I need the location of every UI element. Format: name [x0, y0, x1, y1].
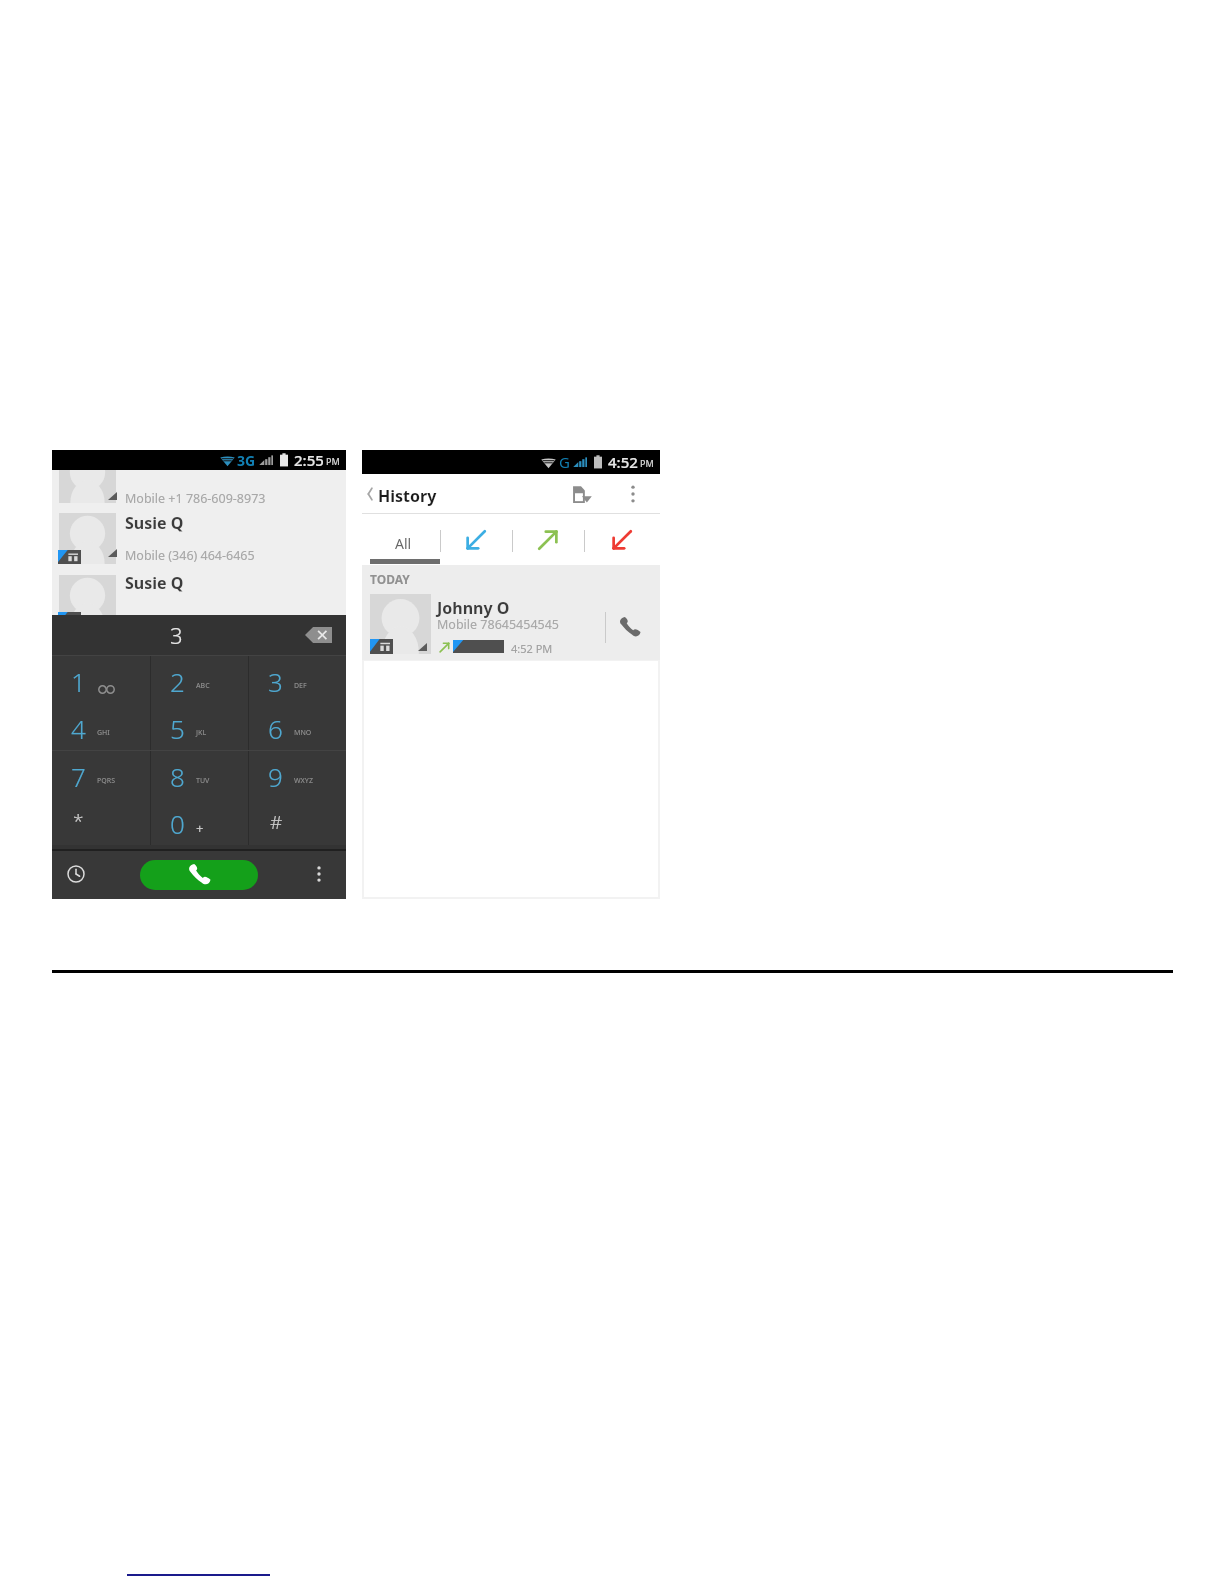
staticText: MNO: [294, 728, 312, 738]
staticText: WXYZ: [294, 776, 313, 786]
button[interactable]: Incoming calls: [440, 514, 512, 565]
staticText: PM: [640, 457, 654, 469]
staticText: Mobile (346) 464-6465: [125, 547, 255, 564]
staticText: *: [73, 808, 84, 834]
button[interactable]: *: [52, 798, 150, 845]
staticText: 9: [268, 759, 283, 794]
button[interactable]: 6: [249, 703, 346, 750]
button[interactable]: Missed calls: [584, 514, 660, 565]
button[interactable]: #: [249, 798, 346, 845]
staticText: 1: [71, 664, 86, 699]
staticText: 4:52 PM: [511, 641, 553, 656]
button[interactable]: 0: [151, 798, 248, 845]
button[interactable]: [52, 512, 346, 574]
staticText: ABC: [196, 681, 210, 691]
staticText: 6: [268, 711, 283, 746]
button[interactable]: [52, 470, 346, 510]
button[interactable]: Call history: [67, 865, 85, 883]
button[interactable]: [52, 574, 346, 615]
staticText: PQRS: [97, 776, 116, 786]
staticText: Susie Q: [125, 512, 184, 534]
button[interactable]: 9: [249, 751, 346, 798]
button[interactable]: Outgoing calls: [512, 514, 584, 565]
staticText: History: [378, 485, 437, 507]
staticText: +: [196, 819, 204, 837]
staticText: TODAY: [370, 571, 410, 587]
button[interactable]: Johnny O: [362, 591, 660, 660]
button[interactable]: All: [362, 514, 440, 565]
staticText: #: [270, 809, 283, 835]
staticText: PM: [326, 455, 340, 467]
button[interactable]: 7: [52, 751, 150, 798]
button[interactable]: More options: [628, 485, 638, 503]
staticText: 2:55: [294, 450, 324, 470]
staticText: JKL: [196, 728, 207, 738]
staticText: 3: [268, 664, 283, 699]
button[interactable]: 5: [151, 703, 248, 750]
staticText: 8: [170, 759, 185, 794]
button[interactable]: More options: [314, 866, 324, 882]
staticText: 5: [170, 711, 185, 746]
staticText: 3: [170, 620, 183, 650]
button[interactable]: Call: [140, 860, 258, 890]
staticText: All: [395, 534, 412, 553]
staticText: 4: [71, 711, 86, 746]
staticText: DEF: [294, 681, 307, 691]
button[interactable]: 2: [151, 656, 248, 703]
button[interactable]: Backspace: [305, 627, 332, 643]
staticText: Mobile 78645454545: [437, 616, 559, 633]
button[interactable]: 8: [151, 751, 248, 798]
button[interactable]: Export call history: [569, 484, 593, 506]
staticText: TUV: [196, 776, 210, 786]
button[interactable]: 1: [52, 656, 150, 703]
button[interactable]: Back: [364, 486, 376, 502]
staticText: 2: [170, 664, 185, 699]
button[interactable]: Call Johnny O: [618, 616, 641, 639]
staticText: GHI: [97, 728, 110, 738]
button[interactable]: 3: [249, 656, 346, 703]
staticText: Mobile +1 786-609-8973: [125, 490, 266, 507]
button[interactable]: 4: [52, 703, 150, 750]
staticText: 7: [71, 759, 86, 794]
staticText: Johnny O: [437, 597, 510, 619]
staticText: G: [559, 452, 570, 472]
staticText: 4:52: [608, 452, 638, 472]
staticText: Susie Q: [125, 572, 184, 594]
staticText: 3G: [237, 451, 256, 470]
staticText: 0: [170, 806, 185, 841]
